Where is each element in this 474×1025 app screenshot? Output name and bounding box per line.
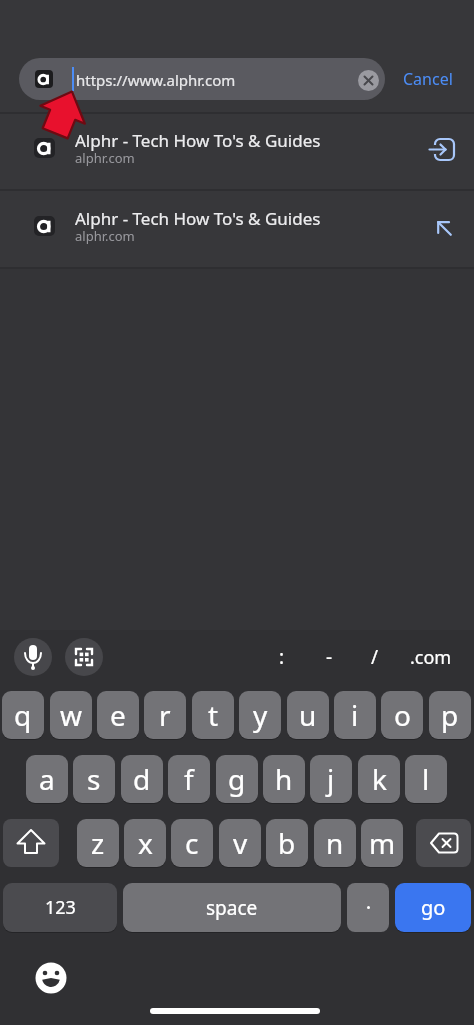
- button[interactable]: b: [266, 819, 308, 867]
- staticText: y: [253, 696, 268, 734]
- button[interactable]: :: [266, 638, 298, 676]
- button[interactable]: e: [97, 691, 139, 739]
- staticText: g: [228, 760, 246, 798]
- button[interactable]: r: [144, 691, 186, 739]
- button[interactable]: [347, 883, 389, 932]
- staticText: 123: [45, 895, 76, 920]
- staticText: c: [185, 824, 199, 862]
- staticText: n: [326, 824, 344, 862]
- button[interactable]: Alphr - Tech How To's & Guides: [0, 191, 474, 268]
- button[interactable]: s: [73, 755, 115, 803]
- staticText: v: [233, 824, 248, 862]
- button[interactable]: Alphr - Tech How To's & Guides: [0, 113, 474, 190]
- staticText: o: [394, 696, 411, 734]
- button[interactable]: l: [405, 755, 447, 803]
- staticText: .com: [410, 645, 452, 670]
- button[interactable]: 123: [3, 883, 117, 932]
- button[interactable]: n: [314, 819, 356, 867]
- button[interactable]: k: [358, 755, 400, 803]
- staticText: m: [369, 824, 396, 862]
- staticText: z: [91, 824, 105, 862]
- button[interactable]: z: [77, 819, 119, 867]
- staticText: space: [206, 895, 258, 921]
- staticText: Alphr - Tech How To's & Guides: [75, 207, 321, 230]
- staticText: alphr.com: [75, 149, 135, 167]
- button[interactable]: a: [26, 755, 68, 803]
- staticText: -: [326, 644, 333, 670]
- staticText: https://www.alphr.com: [76, 70, 236, 90]
- button[interactable]: x: [124, 819, 166, 867]
- button[interactable]: [3, 819, 59, 867]
- staticText: b: [278, 824, 296, 862]
- staticText: a: [39, 760, 55, 798]
- staticText: u: [299, 696, 317, 734]
- staticText: Cancel: [403, 68, 453, 90]
- button[interactable]: f: [168, 755, 210, 803]
- staticText: l: [422, 760, 430, 798]
- button[interactable]: y: [239, 691, 281, 739]
- button[interactable]: p: [429, 691, 471, 739]
- staticText: q: [14, 696, 32, 734]
- button[interactable]: https://www.alphr.com: [19, 58, 385, 100]
- button[interactable]: [416, 819, 471, 867]
- button[interactable]: m: [361, 819, 403, 867]
- button[interactable]: c: [171, 819, 213, 867]
- button[interactable]: [35, 962, 67, 994]
- staticText: p: [441, 696, 459, 734]
- button[interactable]: space: [123, 883, 341, 932]
- staticText: /: [371, 644, 379, 670]
- button[interactable]: g: [216, 755, 258, 803]
- staticText: x: [138, 824, 153, 862]
- button[interactable]: v: [219, 819, 261, 867]
- staticText: d: [133, 760, 151, 798]
- button[interactable]: Cancel: [393, 62, 463, 96]
- staticText: e: [110, 696, 126, 734]
- staticText: s: [87, 760, 101, 798]
- staticText: f: [184, 760, 194, 798]
- staticText: r: [159, 696, 171, 734]
- staticText: k: [372, 760, 387, 798]
- button[interactable]: [358, 70, 379, 91]
- staticText: w: [60, 696, 83, 734]
- staticText: j: [327, 760, 335, 798]
- staticText: t: [208, 696, 219, 734]
- button[interactable]: j: [310, 755, 352, 803]
- button[interactable]: [14, 638, 52, 676]
- button[interactable]: d: [121, 755, 163, 803]
- button[interactable]: w: [50, 691, 92, 739]
- button[interactable]: [65, 638, 103, 676]
- button[interactable]: i: [334, 691, 376, 739]
- staticText: h: [275, 760, 293, 798]
- button[interactable]: q: [2, 691, 44, 739]
- button[interactable]: h: [263, 755, 305, 803]
- staticText: go: [421, 894, 446, 921]
- staticText: :: [279, 644, 285, 670]
- staticText: alphr.com: [75, 227, 135, 245]
- button[interactable]: o: [381, 691, 423, 739]
- button[interactable]: t: [192, 691, 234, 739]
- button[interactable]: .com: [408, 638, 454, 676]
- button[interactable]: go: [395, 883, 471, 932]
- staticText: i: [351, 696, 359, 734]
- staticText: Alphr - Tech How To's & Guides: [75, 129, 321, 152]
- button[interactable]: -: [313, 638, 345, 676]
- button[interactable]: u: [287, 691, 329, 739]
- button[interactable]: /: [359, 638, 391, 676]
